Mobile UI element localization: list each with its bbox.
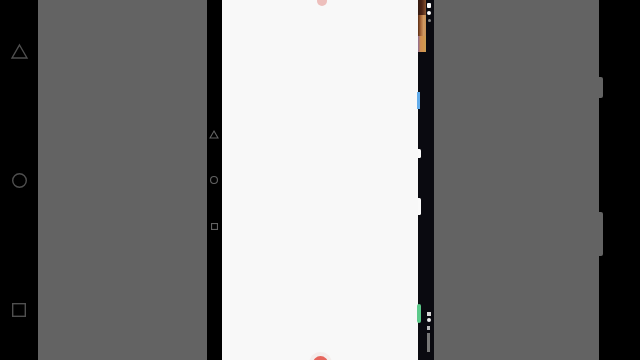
button[interactable]: Recent apps (199, 211, 229, 241)
button[interactable]: Home (199, 165, 229, 195)
button[interactable]: Back (199, 119, 229, 149)
button[interactable]: Back (4, 36, 34, 66)
button[interactable]: Recent apps (4, 295, 34, 325)
button[interactable]: Home (4, 165, 34, 195)
